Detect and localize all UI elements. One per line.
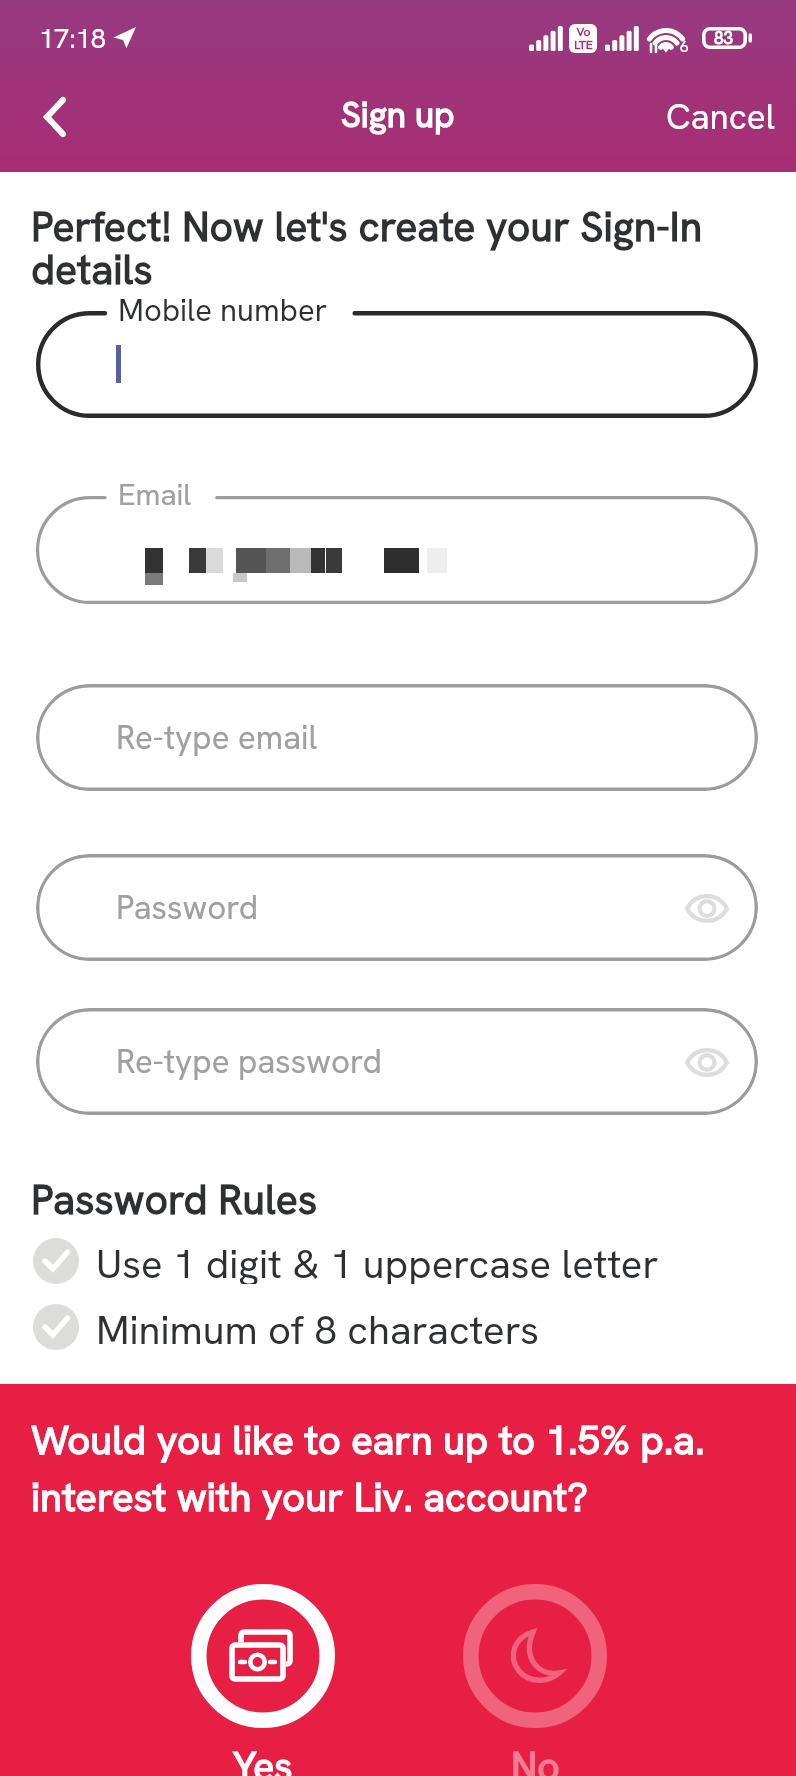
button[interactable]: Password bbox=[36, 854, 758, 961]
button[interactable]: No bbox=[463, 1584, 607, 1728]
staticText: Re-type email bbox=[116, 716, 318, 759]
button[interactable]: Mobile number bbox=[36, 311, 758, 418]
staticText: No bbox=[511, 1741, 560, 1776]
staticText: Perfect! Now let's create your Sign-In d… bbox=[31, 200, 716, 296]
staticText: Use 1 digit & 1 uppercase letter bbox=[96, 1238, 659, 1284]
staticText: Yes bbox=[233, 1741, 293, 1776]
staticText: 6 bbox=[680, 36, 689, 57]
button[interactable]: Back bbox=[0, 78, 110, 156]
staticText: Vo LTE bbox=[574, 24, 593, 53]
button[interactable]: Re-type password bbox=[36, 1008, 758, 1115]
button[interactable]: Email bbox=[36, 496, 758, 604]
staticText: Password Rules bbox=[31, 1173, 318, 1226]
button[interactable]: Show password bbox=[678, 879, 736, 937]
staticText: Re-type password bbox=[116, 1040, 382, 1083]
button[interactable]: Yes bbox=[191, 1584, 335, 1728]
staticText: Email bbox=[118, 475, 192, 514]
button[interactable]: Re-type email bbox=[36, 684, 758, 791]
staticText: Cancel bbox=[666, 94, 775, 140]
staticText: Minimum of 8 characters bbox=[96, 1304, 540, 1350]
staticText: Mobile number bbox=[118, 290, 328, 330]
staticText: 17:18 bbox=[39, 21, 106, 56]
staticText: 83 bbox=[714, 27, 734, 49]
staticText: Sign up bbox=[341, 92, 455, 138]
staticText: Password bbox=[116, 886, 259, 929]
button[interactable]: Cancel bbox=[636, 78, 796, 156]
button[interactable]: Show password bbox=[678, 1033, 736, 1091]
staticText: Would you like to earn up to 1.5% p.a. i… bbox=[31, 1414, 734, 1523]
